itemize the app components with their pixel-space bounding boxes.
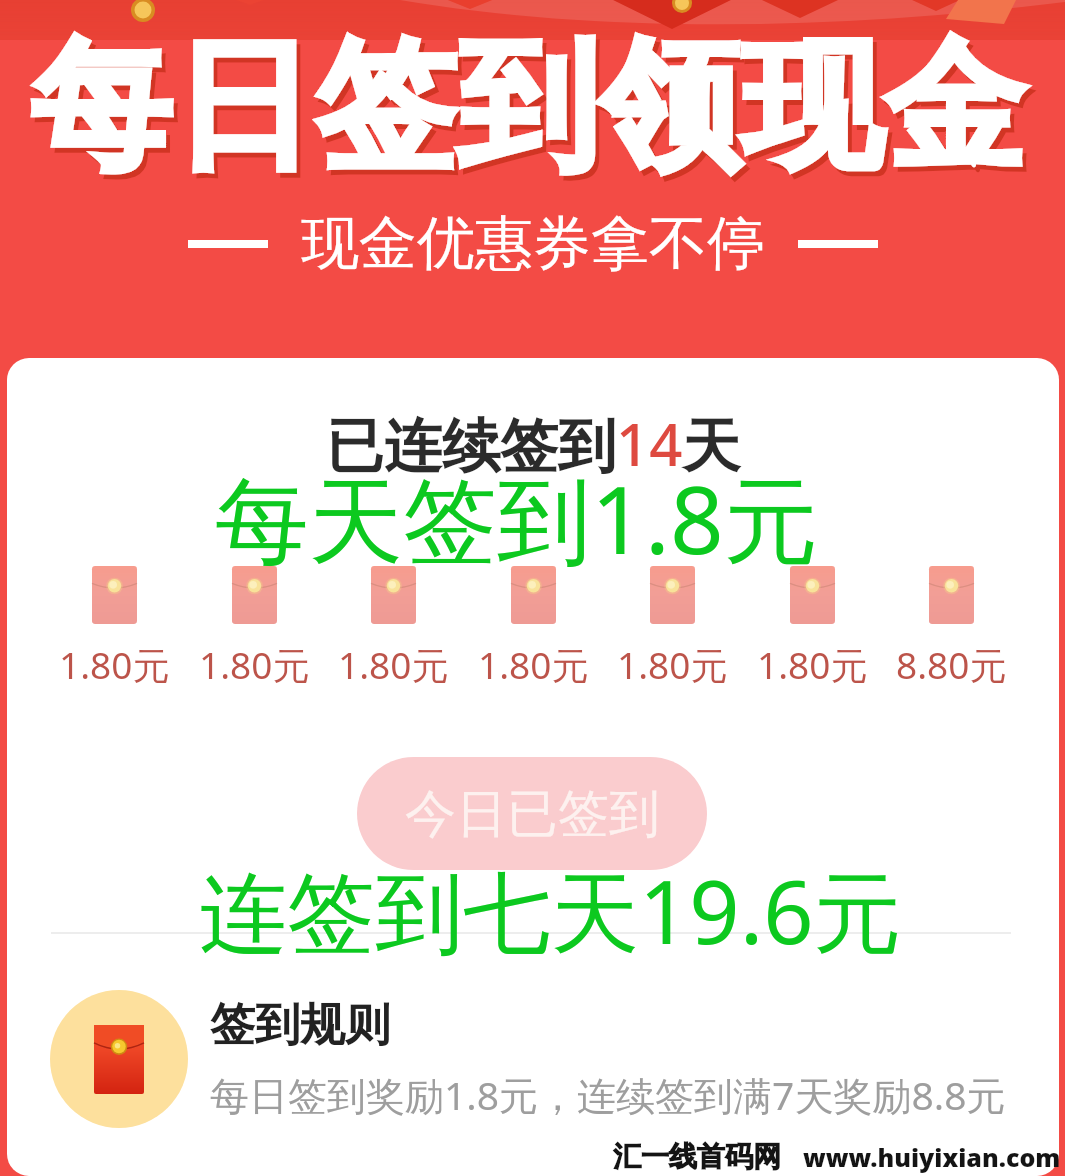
staticText: 每日签到领现金 — [31, 19, 1027, 195]
staticText: 汇一线首码网 — [613, 1139, 781, 1174]
button[interactable]: 第1天红包 1.80元 — [59, 566, 170, 690]
button[interactable]: 第3天红包 1.80元 — [338, 566, 449, 690]
staticText: 连签到七天19.6元 — [199, 850, 902, 970]
staticText: 每天签到1.8元 — [215, 454, 818, 582]
staticText: 1.80元 — [338, 639, 449, 690]
staticText: 1.80元 — [199, 639, 310, 690]
button[interactable]: 第6天红包 1.80元 — [757, 566, 868, 690]
button[interactable]: 第2天红包 1.80元 — [199, 566, 310, 690]
staticText: 今日已签到 — [405, 782, 660, 846]
staticText: 1.80元 — [617, 639, 728, 690]
staticText: 1.80元 — [478, 639, 589, 690]
staticText: 每日签到奖励1.8元，连续签到满7天奖励8.8元 — [210, 1068, 1006, 1121]
staticText: 已连续签到14天 — [326, 404, 741, 483]
button[interactable]: 第5天红包 1.80元 — [617, 566, 728, 690]
staticText: 每日签到领现金 — [35, 24, 1031, 200]
button[interactable]: 第7天红包 8.80元 — [896, 566, 1007, 690]
staticText: 1.80元 — [59, 639, 170, 690]
staticText: www.huiyixian.com — [803, 1140, 1061, 1174]
button[interactable]: 今日已签到 — [357, 757, 707, 870]
button[interactable]: 第4天红包 1.80元 — [478, 566, 589, 690]
staticText: 签到规则 — [210, 997, 390, 1054]
button[interactable]: 签到规则 — [50, 990, 1043, 1128]
staticText: 现金优惠券拿不停 — [301, 207, 765, 280]
staticText: 8.80元 — [896, 639, 1007, 690]
staticText: 1.80元 — [757, 639, 868, 690]
